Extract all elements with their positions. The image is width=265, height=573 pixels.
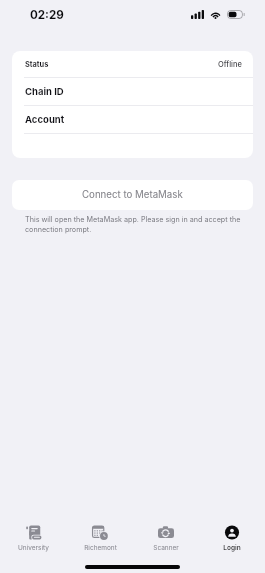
button[interactable]: Connect to MetaMask xyxy=(12,180,253,210)
staticText: Scanner xyxy=(153,544,179,552)
staticText: Chain ID xyxy=(25,86,64,97)
staticText: Status xyxy=(25,60,49,69)
staticText: Offline xyxy=(218,60,242,69)
staticText: Richemont xyxy=(84,544,117,552)
button[interactable]: Account xyxy=(12,106,253,133)
button[interactable]: Richemont xyxy=(67,525,133,552)
staticText: Account xyxy=(25,114,65,125)
staticText: This will open the MetaMask app. Please … xyxy=(25,215,241,234)
button[interactable]: University xyxy=(0,525,67,552)
staticText: Login xyxy=(223,544,241,552)
button[interactable]: Status xyxy=(12,51,253,77)
staticText: University xyxy=(18,544,49,552)
button[interactable]: Scanner xyxy=(133,525,199,552)
staticText: 02:29 xyxy=(30,8,64,22)
button[interactable]: Chain ID xyxy=(12,78,253,105)
staticText: Connect to MetaMask xyxy=(82,189,183,201)
button[interactable]: Login xyxy=(199,525,265,552)
